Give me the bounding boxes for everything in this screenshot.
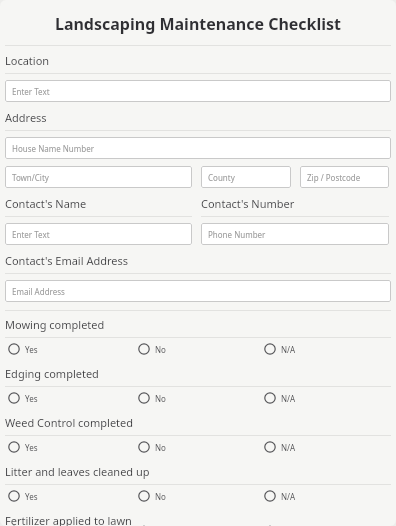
button[interactable]: Zip / Postcode: [300, 166, 389, 188]
staticText: Contact's Email Address: [5, 253, 129, 268]
staticText: N/A: [281, 344, 296, 355]
staticText: Zip / Postcode: [307, 172, 361, 183]
staticText: No: [155, 393, 166, 404]
staticText: Location: [5, 53, 50, 68]
staticText: N/A: [281, 442, 296, 453]
staticText: Landscaping Maintenance Checklist: [5, 13, 391, 35]
staticText: Yes: [25, 393, 38, 404]
staticText: Address: [5, 110, 47, 125]
staticText: Yes: [25, 344, 38, 355]
button[interactable]: N/A: [264, 388, 296, 408]
staticText: Yes: [25, 491, 38, 502]
button[interactable]: Enter Text: [5, 80, 391, 102]
staticText: Enter Text: [12, 86, 50, 97]
staticText: Yes: [25, 442, 38, 453]
button[interactable]: No: [138, 437, 166, 457]
button[interactable]: Enter Text: [5, 223, 192, 245]
staticText: Email Address: [12, 286, 65, 297]
button[interactable]: House Name Number: [5, 137, 391, 159]
button[interactable]: N/A: [264, 437, 296, 457]
button[interactable]: N/A: [264, 486, 296, 506]
staticText: Weed Control completed: [5, 415, 134, 430]
staticText: Fertilizer applied to lawn: [5, 513, 132, 526]
button[interactable]: No: [138, 339, 166, 359]
button[interactable]: Yes: [8, 486, 38, 506]
staticText: House Name Number: [12, 143, 95, 154]
staticText: Contact's Number: [201, 196, 295, 211]
button[interactable]: County: [201, 166, 291, 188]
staticText: Edging completed: [5, 366, 99, 381]
staticText: Enter Text: [12, 229, 50, 240]
staticText: Litter and leaves cleaned up: [5, 464, 150, 479]
staticText: Town/City: [12, 172, 49, 183]
button[interactable]: Yes: [8, 437, 38, 457]
staticText: No: [155, 344, 166, 355]
button[interactable]: No: [138, 388, 166, 408]
button[interactable]: N/A: [264, 339, 296, 359]
button[interactable]: Yes: [8, 388, 38, 408]
staticText: N/A: [281, 491, 296, 502]
staticText: Phone Number: [208, 229, 266, 240]
button[interactable]: No: [138, 486, 166, 506]
button[interactable]: Town/City: [5, 166, 192, 188]
staticText: Mowing completed: [5, 317, 105, 332]
staticText: County: [208, 172, 235, 183]
button[interactable]: Email Address: [5, 280, 391, 302]
button[interactable]: Phone Number: [201, 223, 389, 245]
staticText: Contact's Name: [5, 196, 87, 211]
staticText: No: [155, 491, 166, 502]
button[interactable]: Yes: [8, 339, 38, 359]
staticText: No: [155, 442, 166, 453]
staticText: N/A: [281, 393, 296, 404]
